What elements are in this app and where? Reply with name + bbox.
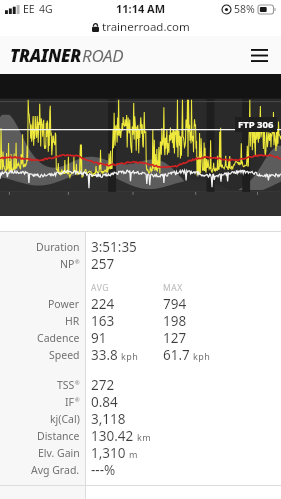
staticText: ---% (91, 461, 116, 478)
staticText: 272 (91, 376, 115, 393)
staticText: ® (75, 379, 80, 386)
staticText: ® (75, 258, 80, 265)
staticText: 58% (234, 2, 255, 16)
staticText: 1,310 (91, 444, 126, 461)
button[interactable]: Speed (0, 346, 281, 363)
staticText: 130.42 (91, 427, 134, 444)
button[interactable]: Cadence (0, 329, 281, 346)
staticText: km (137, 431, 152, 443)
staticText: 91 (91, 329, 107, 346)
button[interactable]: kj(Cal) (0, 410, 281, 427)
button[interactable]: Menu (245, 43, 273, 67)
staticText: ® (75, 396, 80, 403)
staticText: HR (65, 314, 80, 328)
staticText: TRAINER (10, 44, 82, 67)
staticText: 4G (39, 2, 53, 16)
staticText: 198 (163, 312, 187, 329)
staticText: Duration (36, 240, 80, 254)
staticText: 33.8 (91, 346, 118, 363)
staticText: 0.84 (91, 393, 118, 410)
staticText: 3,118 (91, 410, 126, 427)
staticText: 127 (163, 329, 187, 346)
button[interactable]: Power (0, 295, 281, 312)
staticText: Speed (49, 348, 80, 362)
staticText: 257 (91, 255, 115, 272)
staticText: 224 (91, 295, 115, 312)
button[interactable]: IF (0, 393, 281, 410)
staticText: Power (48, 297, 80, 311)
button[interactable]: TSS (0, 376, 281, 393)
staticText: kph (193, 350, 211, 362)
button[interactable]: HR (0, 312, 281, 329)
staticText: trainerroad.com (102, 19, 190, 35)
staticText: m (129, 448, 138, 460)
staticText: IF (65, 395, 75, 409)
staticText: TSS (57, 378, 75, 392)
staticText: AVG (91, 282, 110, 294)
button[interactable]: Distance (0, 427, 281, 444)
staticText: 11:14 AM (116, 1, 166, 16)
staticText: 163 (91, 312, 115, 329)
staticText: Elv. Gain (38, 446, 80, 460)
staticText: NP (60, 257, 75, 271)
staticText: Distance (37, 429, 80, 443)
staticText: FTP 306 (238, 118, 274, 131)
staticText: 794 (163, 295, 187, 312)
staticText: MAX (163, 282, 183, 294)
staticText: kj(Cal) (50, 412, 80, 426)
staticText: Avg Grad. (31, 463, 80, 477)
staticText: ROAD (82, 44, 124, 67)
staticText: 3:51:35 (91, 238, 137, 255)
staticText: 61.7 (163, 346, 190, 363)
staticText: kph (121, 350, 139, 362)
button[interactable]: NP (0, 255, 281, 272)
staticText: Cadence (37, 331, 80, 345)
staticText: EE (23, 2, 35, 16)
button[interactable]: Avg Grad. (0, 461, 281, 478)
button[interactable]: Elv. Gain (0, 444, 281, 461)
button[interactable]: Duration (0, 238, 281, 255)
